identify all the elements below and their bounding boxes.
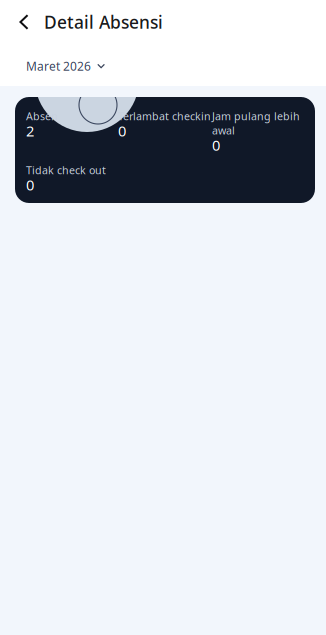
staticText: Terlambat checkin <box>118 109 211 123</box>
staticText: Tidak check out <box>26 163 106 177</box>
button[interactable]: Back <box>0 0 35 44</box>
staticText: Detail Absensi <box>44 10 163 33</box>
staticText: 0 <box>212 135 220 155</box>
staticText: 0 <box>118 121 126 141</box>
button[interactable]: Detail Absensi <box>35 0 163 44</box>
staticText: 0 <box>26 175 34 195</box>
staticText: Absen <box>26 109 58 123</box>
staticText: 2 <box>26 121 34 141</box>
staticText: Maret 2026 <box>26 58 91 74</box>
staticText: Jam pulang lebih awal <box>212 109 300 137</box>
button[interactable]: Maret 2026 <box>0 44 119 80</box>
